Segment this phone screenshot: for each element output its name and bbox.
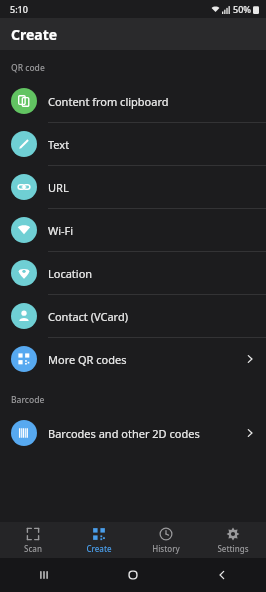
staticText: 5:10 — [10, 3, 28, 15]
staticText: Scan — [24, 543, 42, 554]
button[interactable]: Barcodes and other 2D codes — [0, 412, 266, 454]
button[interactable]: Text — [0, 123, 266, 165]
button[interactable]: More QR codes — [0, 338, 266, 380]
staticText: Settings — [217, 543, 249, 554]
button[interactable]: Content from clipboard — [0, 80, 266, 122]
button[interactable]: Back — [177, 558, 266, 592]
staticText: Barcode — [11, 394, 45, 406]
button[interactable]: Recent apps — [0, 558, 88, 592]
staticText: Content from clipboard — [48, 94, 256, 109]
button[interactable]: Wi-Fi — [0, 209, 266, 251]
staticText: Contact (VCard) — [48, 309, 256, 324]
button[interactable]: Home — [88, 558, 177, 592]
staticText: URL — [48, 180, 256, 195]
button[interactable]: Contact (VCard) — [0, 295, 266, 337]
staticText: Create — [11, 25, 58, 44]
staticText: More QR codes — [48, 352, 244, 367]
staticText: Location — [48, 266, 256, 281]
staticText: Create — [86, 543, 112, 554]
staticText: 50% — [233, 3, 251, 15]
button[interactable]: Create — [66, 522, 132, 558]
staticText: Text — [48, 137, 256, 152]
button[interactable]: URL — [0, 166, 266, 208]
button[interactable]: Scan — [0, 522, 66, 558]
button[interactable]: Location — [0, 252, 266, 294]
staticText: Barcodes and other 2D codes — [48, 426, 244, 441]
button[interactable]: History — [132, 522, 199, 558]
staticText: Wi-Fi — [48, 223, 256, 238]
staticText: QR code — [11, 62, 45, 74]
button[interactable]: Settings — [199, 522, 266, 558]
staticText: History — [152, 543, 180, 554]
